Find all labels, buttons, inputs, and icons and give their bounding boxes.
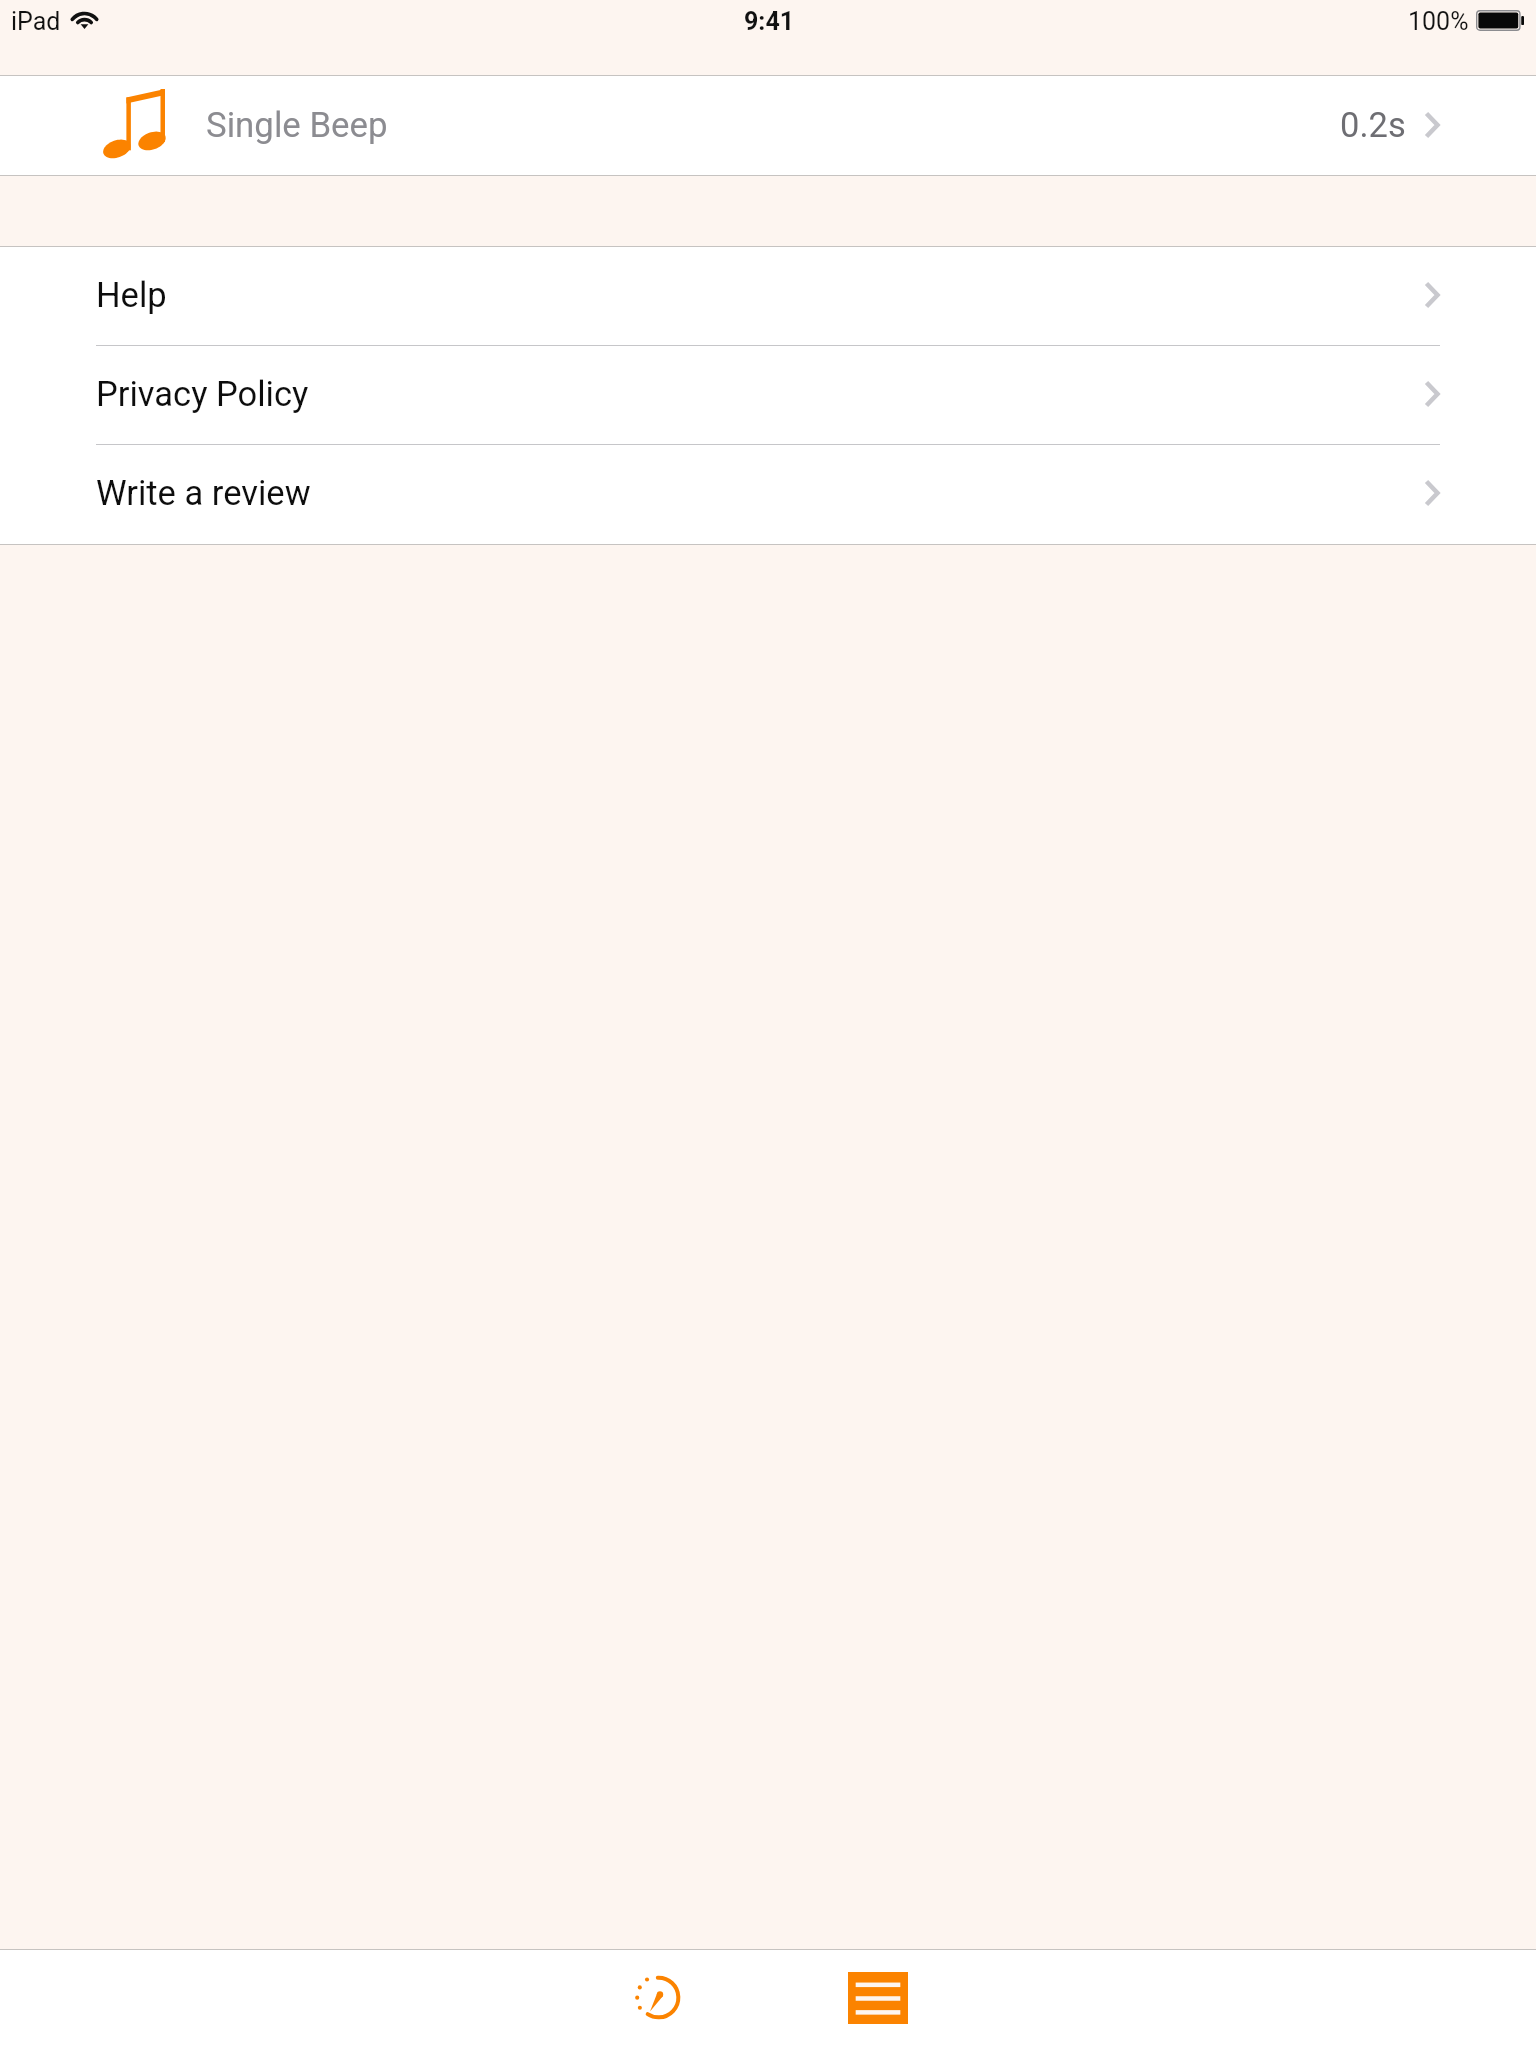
staticText: 9:41 (744, 7, 795, 36)
staticText: Single Beep (206, 105, 388, 146)
staticText: Help (96, 275, 167, 315)
button[interactable]: Help (0, 247, 1536, 346)
staticText: iPad (11, 7, 61, 36)
staticText: Write a review (96, 473, 311, 513)
button[interactable]: Write a review (0, 445, 1536, 544)
staticText: 100% (1408, 7, 1469, 36)
button[interactable]: Privacy Policy (0, 346, 1536, 445)
staticText: 0.2s (1340, 105, 1406, 145)
button[interactable]: Log list (829, 1950, 927, 2045)
staticText: Privacy Policy (96, 374, 309, 414)
button[interactable]: Single Beep (0, 76, 1536, 175)
button[interactable]: Timer (609, 1950, 708, 2045)
